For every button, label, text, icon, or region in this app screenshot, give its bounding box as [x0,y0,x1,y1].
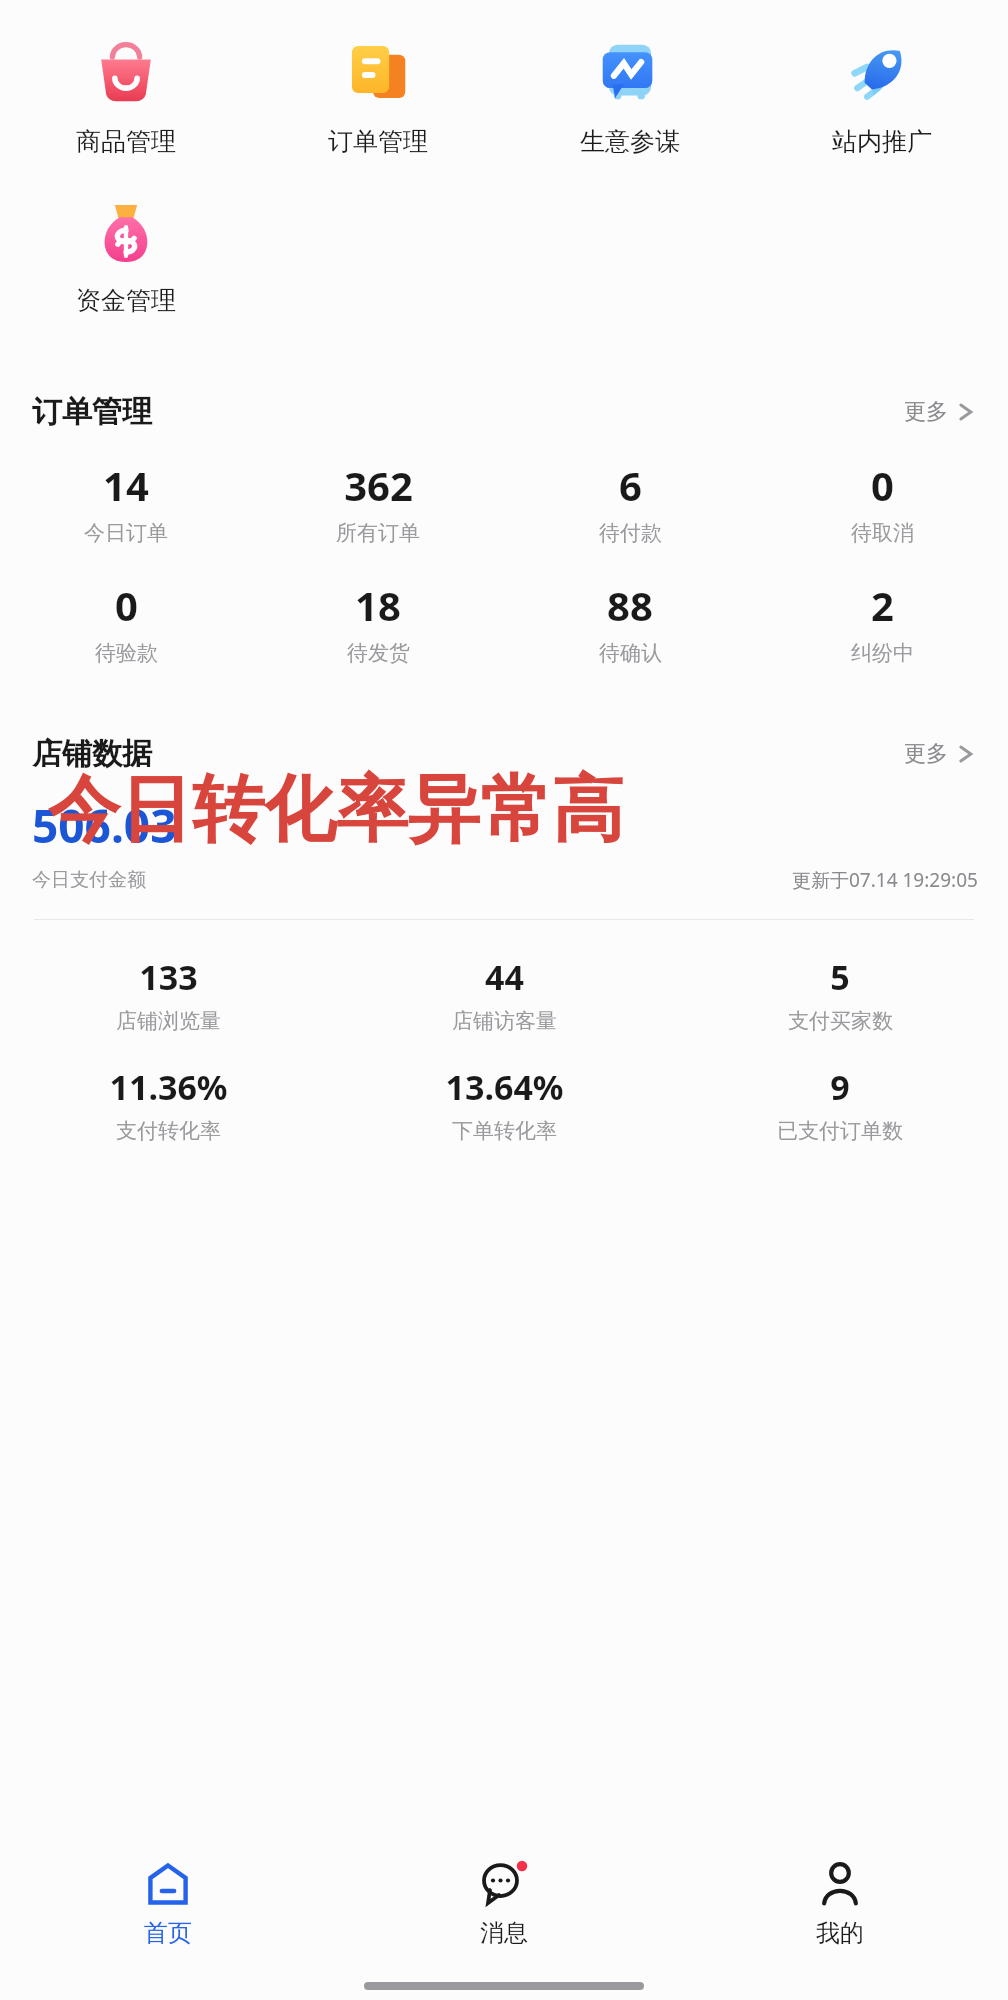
button[interactable]: 362 [252,458,504,546]
staticText: 店铺浏览量 [116,1008,221,1034]
staticText: 18 [355,578,401,632]
button[interactable]: 0 [756,458,1008,546]
other: 我的 [818,1862,862,1906]
staticText: 6 [619,458,642,512]
staticText: 5 [830,954,850,1000]
staticText: 362 [344,458,413,512]
button[interactable]: 资金管理 [0,189,252,320]
other: 商品管理 [95,41,157,103]
button[interactable]: 133 [0,954,336,1034]
staticText: 0 [871,458,894,512]
staticText: 44 [485,954,524,1000]
staticText: 店铺数据 [32,735,152,773]
button[interactable]: 更多 [898,734,980,774]
staticText: 506.03 [32,794,177,857]
staticText: 资金管理 [76,285,176,316]
staticText: 14 [103,458,149,512]
button[interactable]: 0 [0,578,252,666]
button[interactable]: 13.64% [336,1064,672,1144]
button[interactable]: 首页 [0,1842,336,1948]
staticText: 支付买家数 [788,1008,893,1034]
button[interactable]: 更多 [898,392,980,432]
staticText: 纠纷中 [851,640,914,666]
other: 订单管理 [347,41,409,103]
staticText: 今日支付金额 [32,868,146,892]
staticText: 待发货 [347,640,410,666]
staticText: 我的 [816,1918,864,1948]
button[interactable]: 消息 [336,1842,672,1948]
staticText: 待取消 [851,520,914,546]
other: 消息 [479,1859,529,1909]
button[interactable]: 44 [336,954,672,1034]
staticText: 2 [871,578,894,632]
staticText: 更多 [904,398,948,426]
staticText: 订单管理 [328,126,428,157]
staticText: 13.64% [445,1064,564,1110]
button[interactable]: 11.36% [0,1064,336,1144]
button[interactable]: 18 [252,578,504,666]
staticText: 更多 [904,740,948,768]
button[interactable]: 生意参谋 [504,30,756,161]
staticText: 首页 [144,1918,192,1948]
staticText: 更新于07.14 19:29:05 [792,867,978,893]
staticText: 今日转化率异常高 [48,765,624,856]
button[interactable]: 2 [756,578,1008,666]
staticText: 生意参谋 [580,126,680,157]
button[interactable]: 6 [504,458,756,546]
button[interactable]: 我的 [672,1842,1008,1948]
other: 生意参谋 [599,41,661,103]
staticText: 待确认 [599,640,662,666]
button[interactable]: 5 [672,954,1008,1034]
other: 站内推广 [851,41,913,103]
staticText: 11.36% [109,1064,228,1110]
staticText: 0 [115,578,138,632]
staticText: 待验款 [95,640,158,666]
staticText: 9 [830,1064,850,1110]
button[interactable]: 订单管理 [252,30,504,161]
staticText: 待付款 [599,520,662,546]
staticText: 商品管理 [76,126,176,157]
button[interactable]: 14 [0,458,252,546]
staticText: 今日订单 [84,520,168,546]
staticText: 所有订单 [336,520,420,546]
button[interactable]: 88 [504,578,756,666]
staticText: 88 [607,578,653,632]
other: 首页 [146,1862,190,1906]
button[interactable]: 9 [672,1064,1008,1144]
staticText: 消息 [480,1918,528,1948]
staticText: 店铺访客量 [452,1008,557,1034]
staticText: 133 [139,954,198,1000]
other: 资金管理 [95,200,157,262]
staticText: 已支付订单数 [777,1118,903,1144]
staticText: 支付转化率 [116,1118,221,1144]
button[interactable]: 站内推广 [756,30,1008,161]
button[interactable]: 商品管理 [0,30,252,161]
staticText: 下单转化率 [452,1118,557,1144]
staticText: 订单管理 [32,393,152,431]
staticText: 站内推广 [832,126,932,157]
